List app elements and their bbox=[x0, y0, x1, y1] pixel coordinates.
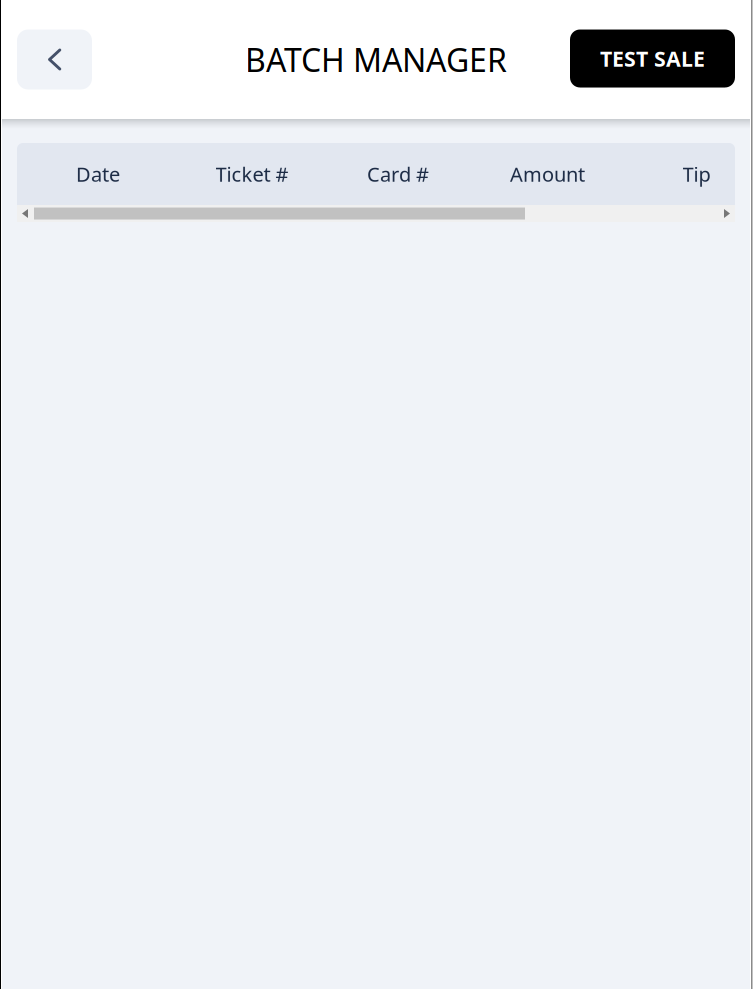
staticText: Date bbox=[76, 161, 120, 187]
button[interactable]: Amount bbox=[471, 143, 624, 205]
button[interactable]: Card # bbox=[325, 143, 471, 205]
staticText: Ticket # bbox=[215, 161, 288, 187]
staticText: Tip bbox=[682, 161, 710, 187]
button[interactable]: Tip bbox=[624, 143, 753, 205]
button[interactable]: Ticket # bbox=[179, 143, 325, 205]
staticText: BATCH MANAGER bbox=[245, 38, 507, 81]
button[interactable]: Back bbox=[17, 29, 92, 89]
staticText: Card # bbox=[367, 161, 429, 187]
staticText: TEST SALE bbox=[600, 44, 705, 73]
button[interactable]: Scroll left bbox=[17, 205, 34, 222]
button[interactable]: Date bbox=[17, 143, 179, 205]
button[interactable]: Scroll right bbox=[718, 205, 735, 222]
button[interactable]: TEST SALE bbox=[570, 30, 735, 88]
staticText: Amount bbox=[510, 161, 585, 187]
